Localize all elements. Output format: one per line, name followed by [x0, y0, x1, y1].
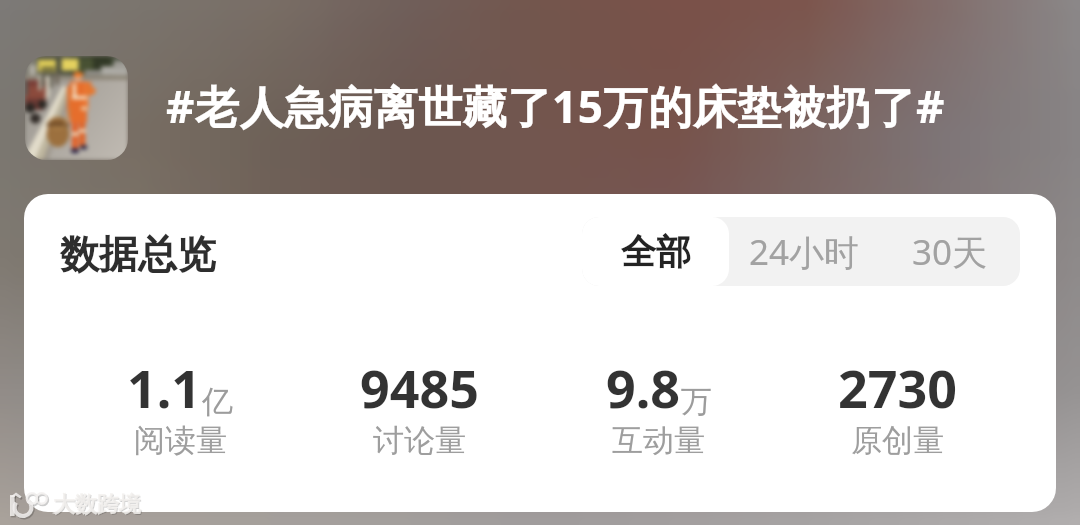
button[interactable]: 全部: [582, 217, 729, 286]
staticText: 大数跨境: [53, 491, 141, 519]
other: Site watermark: [6, 488, 54, 522]
button[interactable]: 30天: [880, 217, 1020, 286]
staticText: 9.8: [606, 352, 681, 423]
staticText: 1.1: [127, 352, 202, 423]
staticText: 大数跨境: [54, 492, 142, 520]
staticText: 数据总览: [60, 230, 216, 279]
staticText: #老人急病离世藏了15万的床垫被扔了#: [166, 76, 945, 136]
staticText: 万: [681, 382, 712, 421]
button[interactable]: 24小时: [729, 217, 880, 286]
staticText: 互动量: [612, 421, 705, 460]
button[interactable]: 1.1: [60, 352, 300, 462]
staticText: 30天: [912, 228, 988, 276]
staticText: 讨论量: [373, 421, 466, 460]
staticText: 2730: [838, 352, 957, 423]
button[interactable]: Topic cover image: [25, 56, 128, 160]
staticText: 全部: [621, 230, 691, 274]
staticText: 24小时: [749, 228, 860, 276]
staticText: 9485: [360, 352, 479, 423]
staticText: 原创量: [851, 421, 944, 460]
button[interactable]: 9485: [300, 352, 539, 462]
button[interactable]: 2730: [778, 352, 1017, 462]
staticText: 亿: [202, 382, 233, 421]
button[interactable]: 9.8: [539, 352, 778, 462]
staticText: 阅读量: [134, 421, 227, 460]
